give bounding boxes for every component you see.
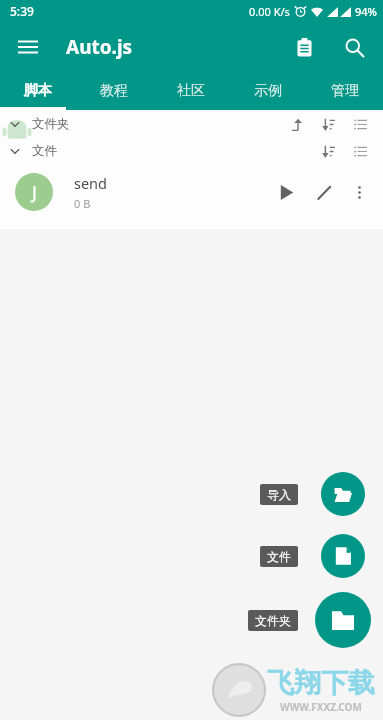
button[interactable]: 管理 (306, 72, 383, 110)
staticText: 94% (355, 4, 377, 19)
staticText: 导入 (267, 487, 291, 502)
button[interactable]: Go to parent folder (283, 111, 309, 137)
button[interactable]: View options (347, 138, 373, 164)
button[interactable]: 示例 (229, 72, 306, 110)
staticText: 社区 (177, 82, 205, 100)
staticText: 文件夹 (32, 116, 70, 132)
button[interactable]: 文件夹 (0, 110, 383, 137)
staticText: 示例 (254, 82, 282, 100)
staticText: 5:39 (10, 3, 34, 19)
button[interactable]: 教程 (76, 72, 152, 110)
button[interactable]: 文件 (260, 546, 298, 567)
button[interactable]: 文件夹 (248, 610, 298, 631)
staticText: Auto.js (66, 34, 133, 60)
staticText: 管理 (331, 82, 359, 100)
button[interactable]: New file (321, 534, 365, 578)
button[interactable]: 脚本 (0, 72, 76, 110)
staticText: 文件 (32, 143, 57, 159)
button[interactable]: 文件 (0, 137, 383, 164)
button[interactable]: Open navigation menu (8, 27, 48, 67)
button[interactable]: J (0, 164, 383, 220)
button[interactable]: Edit script (307, 175, 341, 209)
button[interactable]: Run script (269, 175, 303, 209)
button[interactable]: More options (343, 176, 375, 208)
button[interactable]: 社区 (152, 72, 229, 110)
button[interactable]: Import (321, 472, 365, 516)
staticText: 教程 (100, 82, 128, 100)
staticText: 飞翔下载 (267, 666, 375, 700)
staticText: send (74, 173, 108, 193)
staticText: J (32, 180, 37, 205)
staticText: 文件夹 (255, 613, 291, 628)
button[interactable]: 导入 (260, 484, 298, 505)
staticText: 脚本 (24, 82, 52, 100)
button[interactable]: Sort (315, 111, 341, 137)
button[interactable]: Sort (315, 138, 341, 164)
staticText: 0 B (74, 196, 91, 211)
button[interactable]: Search (333, 26, 375, 68)
staticText: 文件 (267, 549, 291, 564)
staticText: 0.00 K/s (249, 4, 290, 19)
staticText: WWW.FXXZ.COM (280, 700, 362, 714)
button[interactable]: New folder (315, 592, 371, 648)
button[interactable]: View options (347, 111, 373, 137)
button[interactable]: Logs (283, 26, 325, 68)
